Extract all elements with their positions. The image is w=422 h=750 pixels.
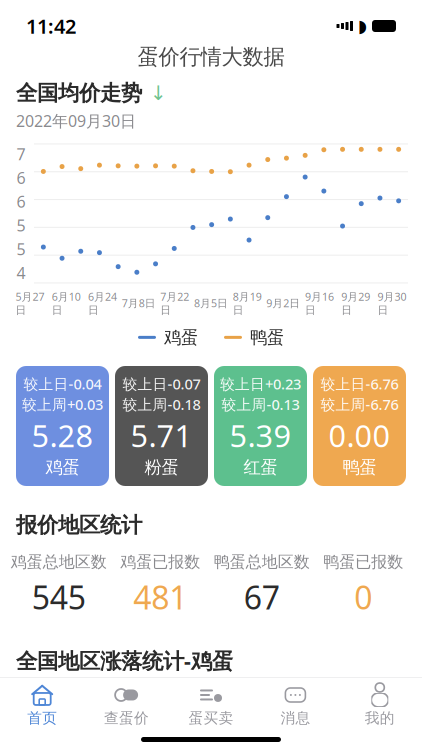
staticText: 较上周-6.76 [320,394,398,414]
staticText: 较上周-0.18 [122,394,200,414]
staticText: 8月5日 [194,296,228,310]
staticText: 2022年09月30日 [16,110,136,131]
staticText: 鸡蛋总地区数 [11,552,107,572]
button[interactable]: 消息 [253,678,338,727]
staticText: 鸭蛋已报数 [323,552,403,572]
staticText: ◗ [358,16,367,36]
staticText: 7 [16,143,25,165]
staticText: 6月24日 [88,289,117,317]
staticText: 蛋价行情大数据 [137,44,284,70]
staticText: 5 [16,215,25,236]
staticText: 67 [244,576,280,618]
staticText: 较上日-0.04 [23,374,101,393]
staticText: 全国均价走势 [16,80,142,106]
staticText: 鸡蛋 [164,327,198,348]
staticText: 4 [16,262,25,283]
staticText: 0 [354,576,372,618]
staticText: 鸡蛋 [45,457,79,478]
staticText: 11:42 [26,13,76,39]
staticText: 5.28 [31,415,93,456]
staticText: 7月22日 [160,289,189,317]
staticText: 我的 [365,709,395,727]
staticText: 全国地区涨落统计-鸡蛋 [16,646,233,675]
staticText: 9月16日 [305,289,334,317]
staticText: 蛋买卖 [188,709,233,727]
staticText: 5月27日 [16,289,45,317]
staticText: ↓ [150,82,167,104]
staticText: 5.71 [130,415,192,456]
button[interactable]: 查蛋价 [84,678,169,727]
button[interactable]: 首页 [0,678,84,727]
button[interactable]: 较上日-6.76 [313,366,406,486]
staticText: 8月19日 [233,289,262,317]
button[interactable]: 较上日-0.04 [16,366,109,486]
staticText: 9月2日 [266,296,300,310]
staticText: 9月29日 [341,289,370,317]
staticText: 消息 [280,709,310,727]
button[interactable]: 较上日-0.07 [115,366,208,486]
staticText: 545 [32,576,86,618]
staticText: 较上日-0.07 [122,374,200,393]
staticText: 0.00 [328,415,390,456]
staticText: 6月10日 [52,289,81,317]
staticText: 查蛋价 [104,709,149,727]
staticText: 报价地区统计 [16,512,142,538]
staticText: 鸭蛋总地区数 [214,552,310,572]
button[interactable]: 蛋买卖 [169,678,253,727]
staticText: 鸡蛋已报数 [120,552,200,572]
staticText: 较上日-6.76 [320,374,398,393]
staticText: 6 [16,191,25,212]
staticText: 红蛋 [243,457,277,478]
staticText: 粉蛋 [144,457,178,478]
staticText: 7月8日 [122,296,156,310]
staticText: 较上周+0.03 [22,394,103,414]
staticText: 6 [16,167,25,188]
staticText: 较上周-0.13 [221,394,299,414]
staticText: 较上日+0.23 [220,374,301,393]
staticText: 42.20% [299,699,364,723]
staticText: 481 [133,576,187,618]
staticText: 鸭蛋 [250,327,284,348]
staticText: 首页 [27,709,57,727]
button[interactable]: 我的 [338,678,422,727]
staticText: 9月30日 [377,289,406,317]
staticText: 鸭蛋 [342,457,376,478]
button[interactable]: 较上日+0.23 [214,366,307,486]
staticText: 5.39 [229,415,291,456]
staticText: 5 [16,238,25,260]
